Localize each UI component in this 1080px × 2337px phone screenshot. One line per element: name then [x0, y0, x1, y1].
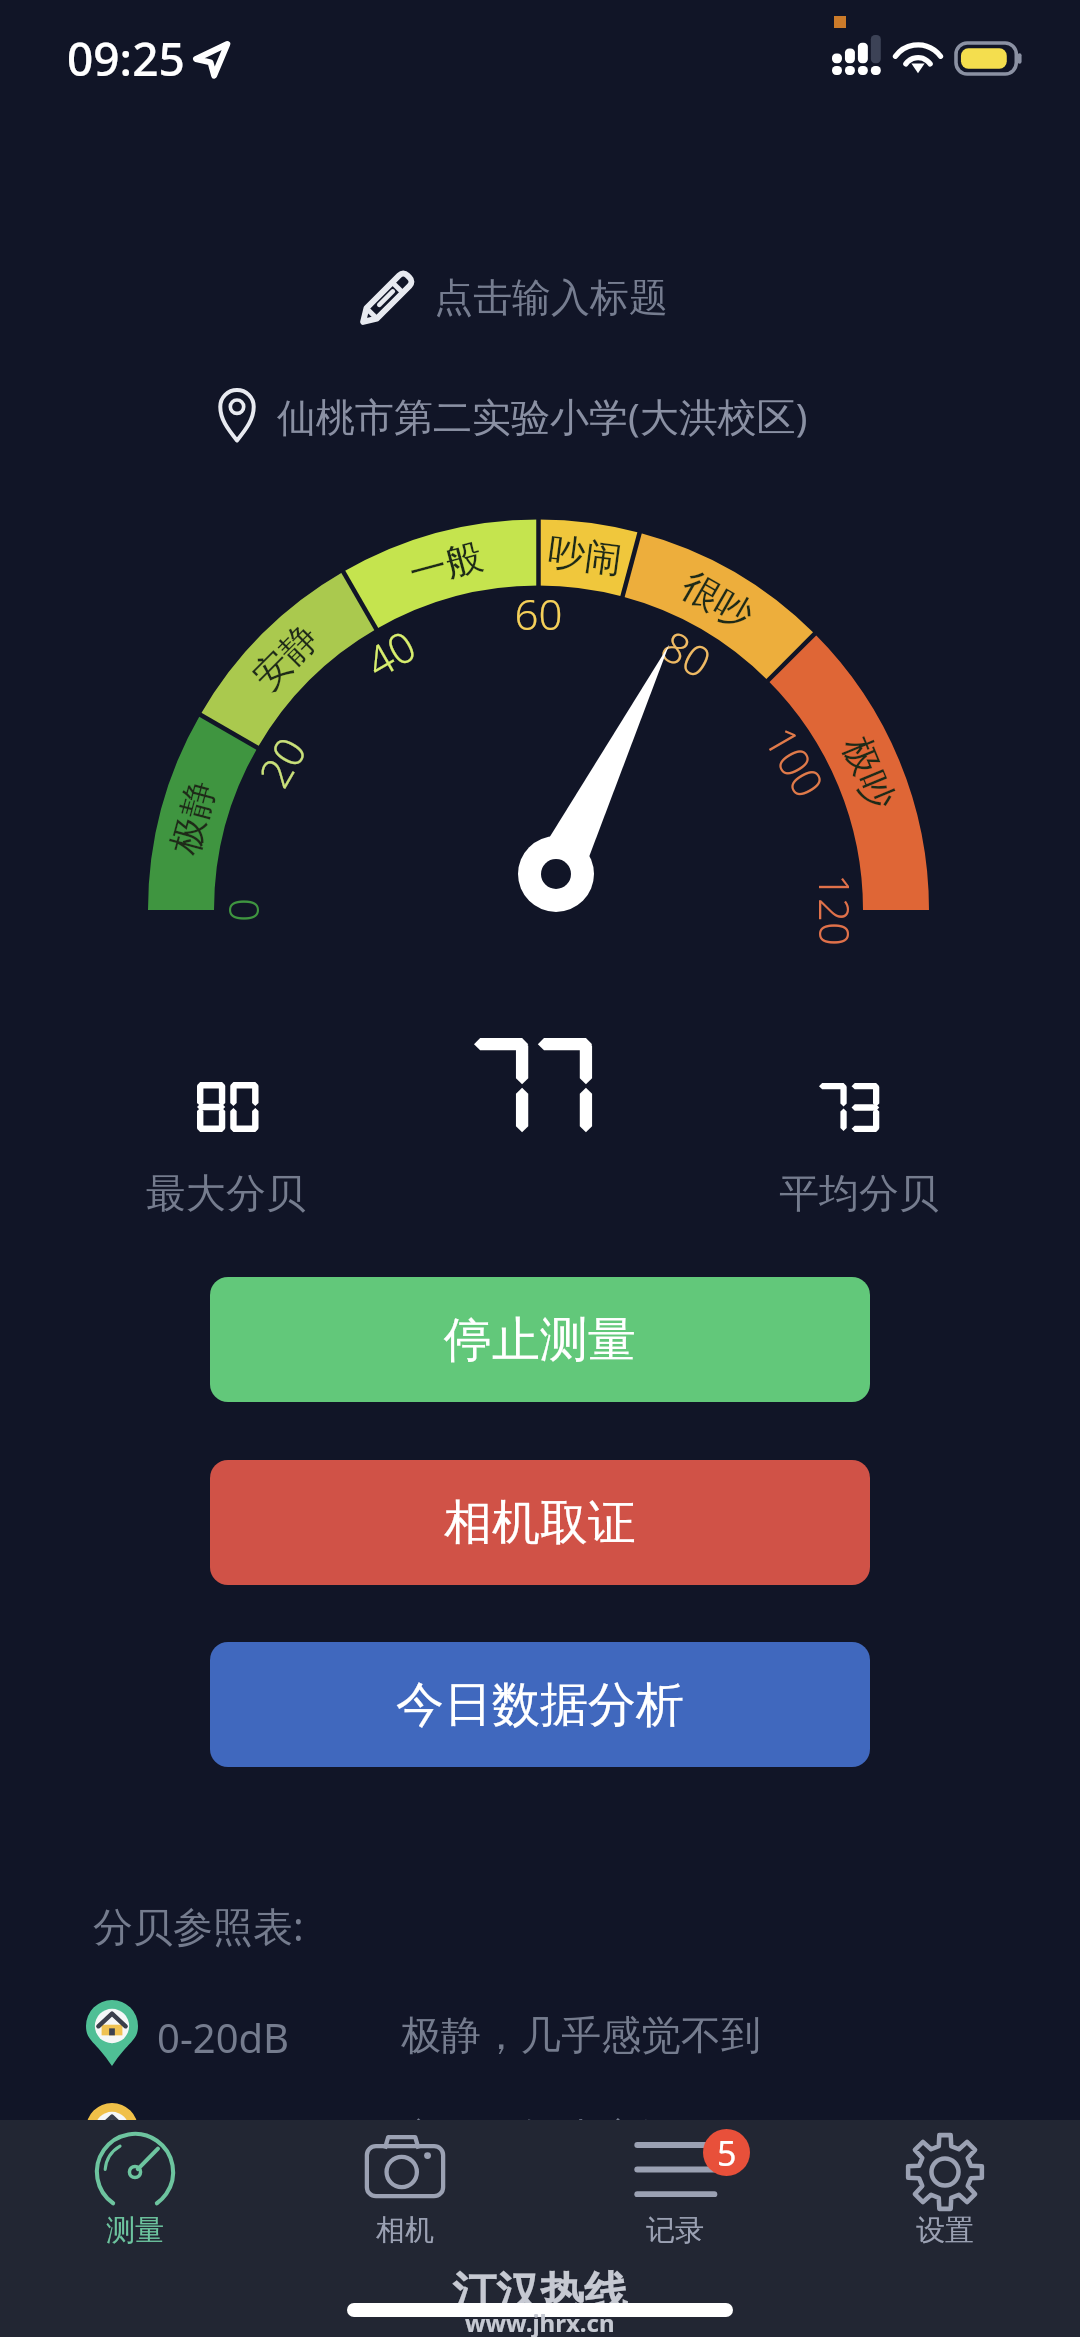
button[interactable]: Records — [540, 2120, 810, 2280]
button[interactable]: 停止测量 — [210, 1277, 870, 1402]
button[interactable]: 仙桃市第二实验小学(大洪校区) — [0, 382, 1053, 448]
staticText: 设置 — [916, 2212, 974, 2249]
staticText: 最大分贝 — [146, 1168, 306, 1218]
staticText: 测量 — [106, 2212, 164, 2249]
other: Settings — [904, 2131, 986, 2213]
button[interactable]: Settings — [810, 2120, 1080, 2280]
staticText: 记录 — [646, 2212, 704, 2249]
staticText: 相机取证 — [444, 1493, 636, 1553]
button[interactable]: Camera — [270, 2120, 540, 2280]
button[interactable]: 相机取证 — [210, 1460, 870, 1585]
staticText: 汀汉热线 — [452, 2266, 628, 2321]
other: Records — [634, 2131, 716, 2213]
other: Camera — [364, 2131, 446, 2213]
other: Measure — [94, 2131, 176, 2213]
staticText: 20-40dB — [157, 2113, 312, 2167]
staticText: 今日数据分析 — [396, 1675, 684, 1735]
staticText: 5 — [717, 2130, 737, 2176]
staticText: 仙桃市第二实验小学(大洪校区) — [277, 389, 808, 442]
button[interactable]: Measure — [0, 2120, 270, 2280]
button[interactable]: 点击输入标题 — [0, 266, 1054, 328]
staticText: 安静，轻声交谈 — [401, 2113, 681, 2163]
staticText: www.jhrx.cn — [465, 2306, 615, 2337]
staticText: 极静，几乎感觉不到 — [401, 2010, 761, 2060]
staticText: 停止测量 — [444, 1310, 636, 1370]
staticText: 相机 — [376, 2212, 434, 2249]
staticText: 分贝参照表: — [93, 1898, 304, 1953]
staticText: 0-20dB — [157, 2010, 290, 2064]
staticText: 平均分贝 — [779, 1168, 939, 1218]
staticText: 09:25 — [67, 27, 185, 90]
staticText: 点击输入标题 — [434, 273, 668, 322]
button[interactable]: 今日数据分析 — [210, 1642, 870, 1767]
